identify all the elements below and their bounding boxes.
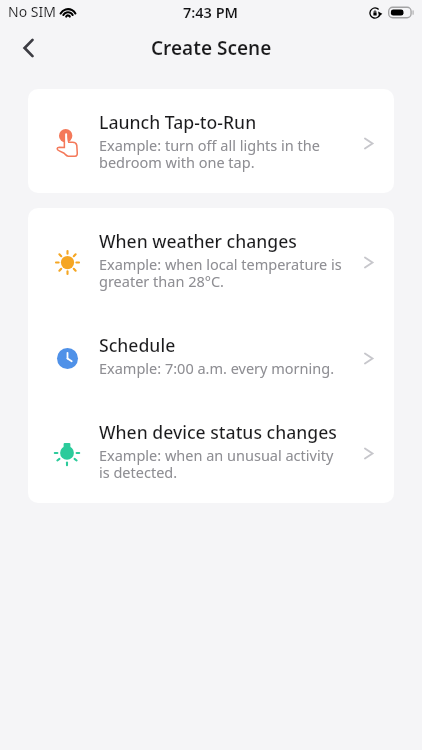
- button[interactable]: When weather changes: [28, 208, 394, 312]
- button[interactable]: Back: [6, 28, 52, 68]
- staticText: When device status changes: [99, 420, 337, 444]
- staticText: Schedule: [99, 333, 176, 357]
- button[interactable]: Schedule: [28, 312, 394, 399]
- staticText: Example: when an unusual activity is det…: [99, 445, 334, 482]
- staticText: No SIM: [8, 2, 56, 21]
- staticText: Example: turn off all lights in the bedr…: [99, 135, 320, 172]
- staticText: Example: when local temperature is great…: [99, 254, 342, 291]
- staticText: 7:43 PM: [183, 2, 239, 22]
- button[interactable]: Launch Tap-to-Run: [28, 89, 394, 193]
- button[interactable]: When device status changes: [28, 399, 394, 503]
- staticText: Launch Tap-to-Run: [99, 110, 257, 134]
- staticText: Create Scene: [151, 35, 272, 61]
- staticText: When weather changes: [99, 229, 297, 253]
- staticText: Example: 7:00 a.m. every morning.: [99, 358, 335, 378]
